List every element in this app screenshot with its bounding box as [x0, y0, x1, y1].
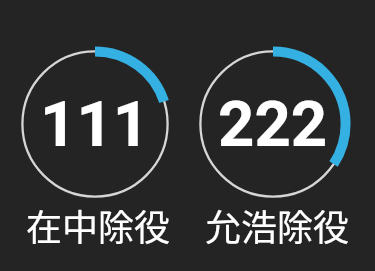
button[interactable]: 在中除役 111	[15, 44, 175, 256]
staticText: 222	[218, 87, 328, 161]
button[interactable]: 允浩除役 222	[193, 44, 353, 256]
staticText: 在中除役	[18, 199, 178, 251]
staticText: 允浩除役	[197, 199, 357, 251]
staticText: 111	[40, 87, 150, 161]
